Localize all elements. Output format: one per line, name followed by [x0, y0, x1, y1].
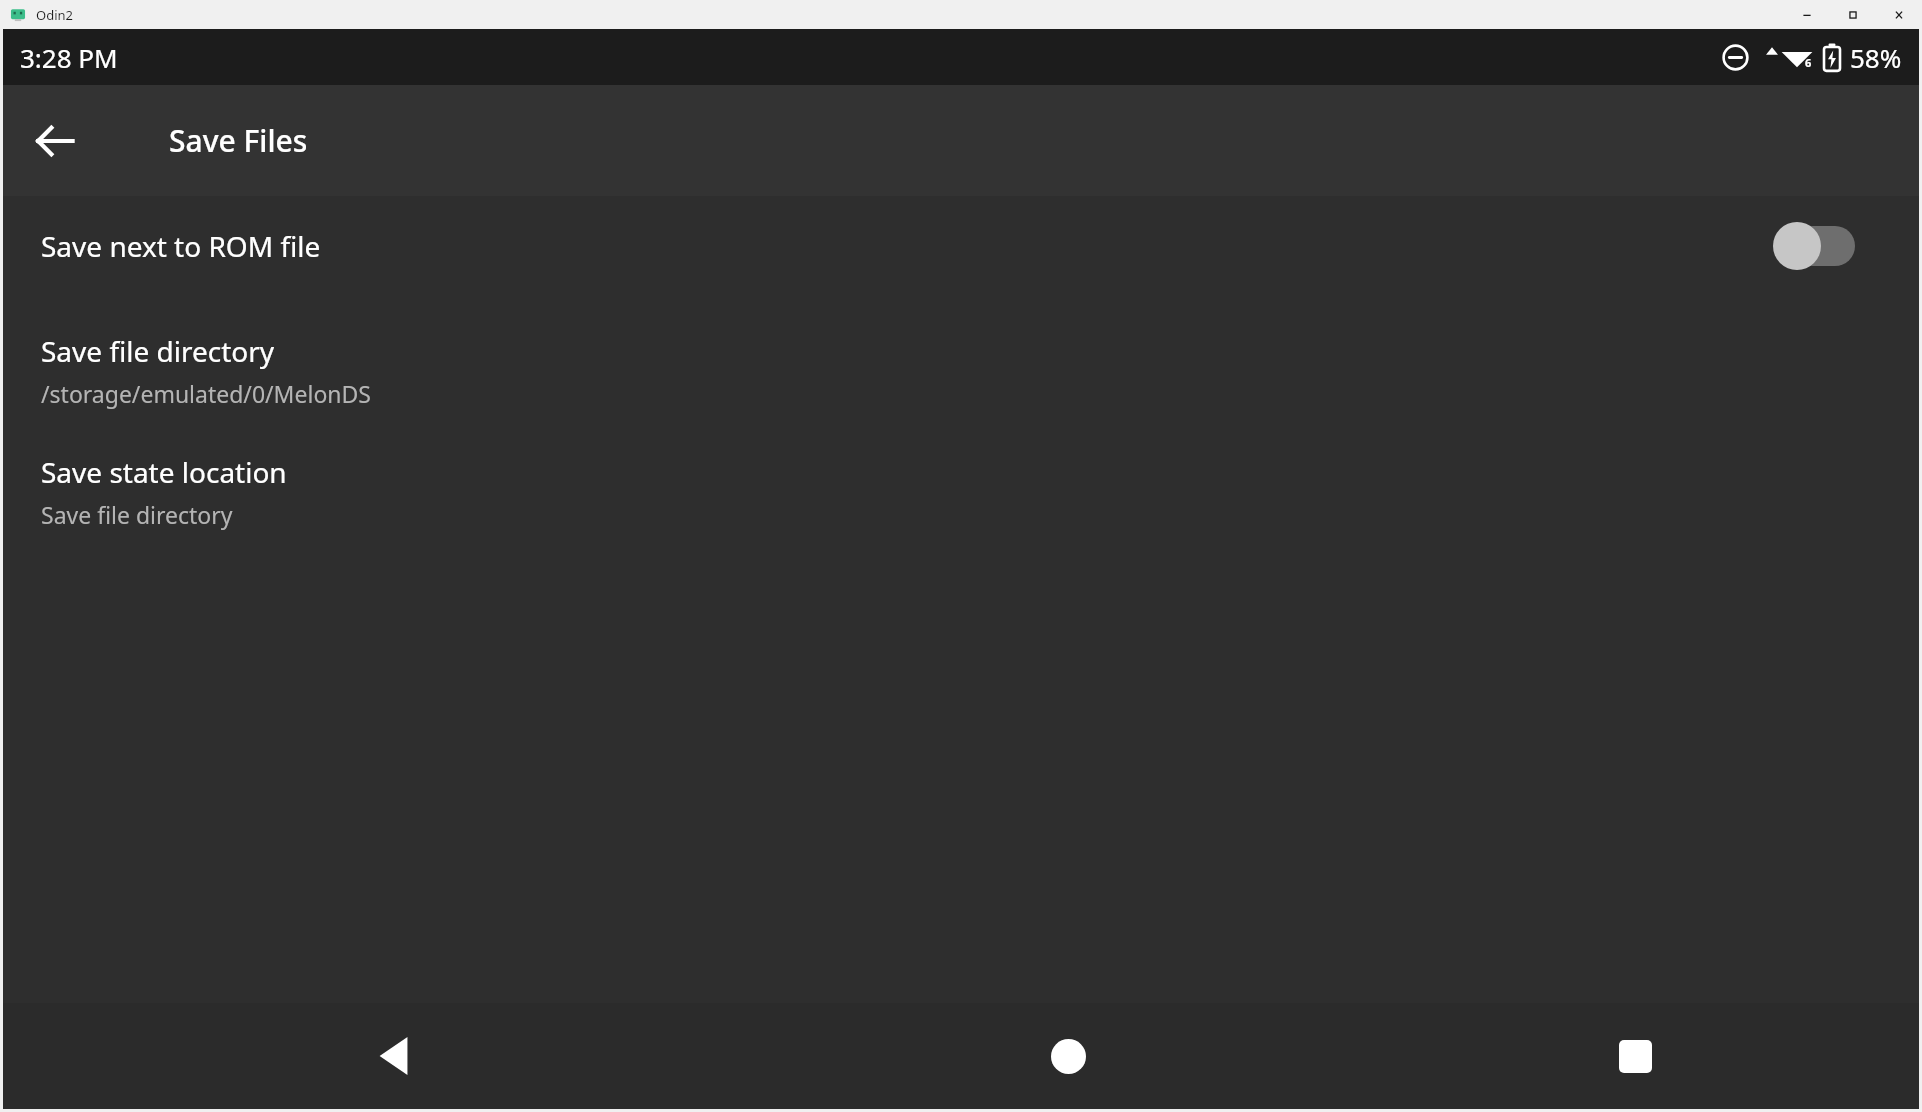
button[interactable]: Save file directory	[3, 328, 1919, 413]
staticText: /storage/emulated/0/MelonDS	[41, 378, 371, 409]
staticText: 6	[1805, 55, 1812, 70]
button[interactable]: Home	[785, 1003, 1352, 1109]
button[interactable]: Back	[21, 107, 89, 175]
staticText: Save state location	[41, 453, 287, 491]
button[interactable]: Close	[1876, 0, 1922, 29]
staticText: 58%	[1850, 40, 1902, 75]
button[interactable]: Save state location	[3, 449, 1919, 534]
button[interactable]: Maximize	[1830, 0, 1876, 29]
staticText: 3:28 PM	[20, 40, 118, 75]
button[interactable]: Save next to ROM file	[3, 196, 1919, 296]
button[interactable]: Back	[3, 1003, 785, 1109]
button[interactable]: Minimize	[1784, 0, 1830, 29]
button[interactable]: Recent apps	[1352, 1003, 1919, 1109]
button[interactable]: Save next to ROM file toggle	[1773, 218, 1859, 274]
staticText: Save file directory	[41, 332, 275, 370]
staticText: Save next to ROM file	[41, 227, 1773, 265]
staticText: Save file directory	[41, 499, 233, 530]
staticText: Odin2	[36, 6, 73, 24]
staticText: Save Files	[169, 120, 308, 161]
